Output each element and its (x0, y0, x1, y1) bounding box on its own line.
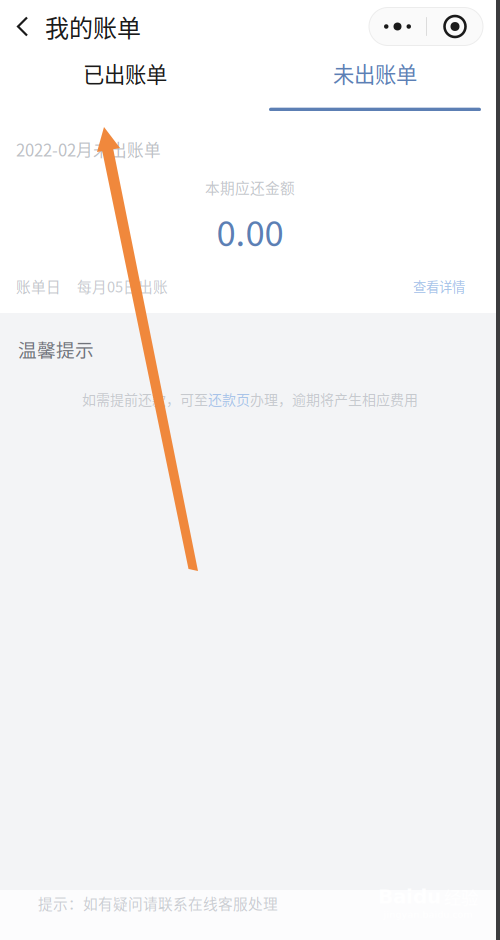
staticText: 查看详情 (413, 277, 465, 296)
staticText: 如需提前还款，可至 (82, 389, 208, 409)
button[interactable]: Close mini program (427, 7, 483, 45)
staticText: 本期应还金额 (205, 177, 295, 198)
button[interactable]: 查看详情 (413, 277, 465, 296)
button[interactable]: Back (0, 1, 45, 51)
staticText: 还款页 (208, 389, 250, 409)
staticText: 已出账单 (83, 58, 167, 89)
staticText: 2022-02月未出账单 (16, 137, 161, 161)
staticText: 提示：如有疑问请联系在线客服处理 (38, 892, 278, 914)
staticText: 温馨提示 (18, 335, 94, 362)
staticText: 每月05日出账 (77, 276, 168, 297)
staticText: 账单日 (16, 276, 61, 297)
staticText: 0.00 (216, 206, 283, 256)
staticText: 未出账单 (333, 58, 417, 89)
staticText: Baidu (378, 885, 441, 908)
button[interactable]: 未出账单 (250, 51, 500, 113)
staticText: 我的账单 (45, 9, 141, 44)
staticText: 经验 (444, 884, 478, 909)
button[interactable]: More options (369, 7, 426, 45)
button[interactable]: 已出账单 (0, 51, 250, 113)
staticText: 办理，逾期将产生相应费用 (250, 389, 418, 409)
